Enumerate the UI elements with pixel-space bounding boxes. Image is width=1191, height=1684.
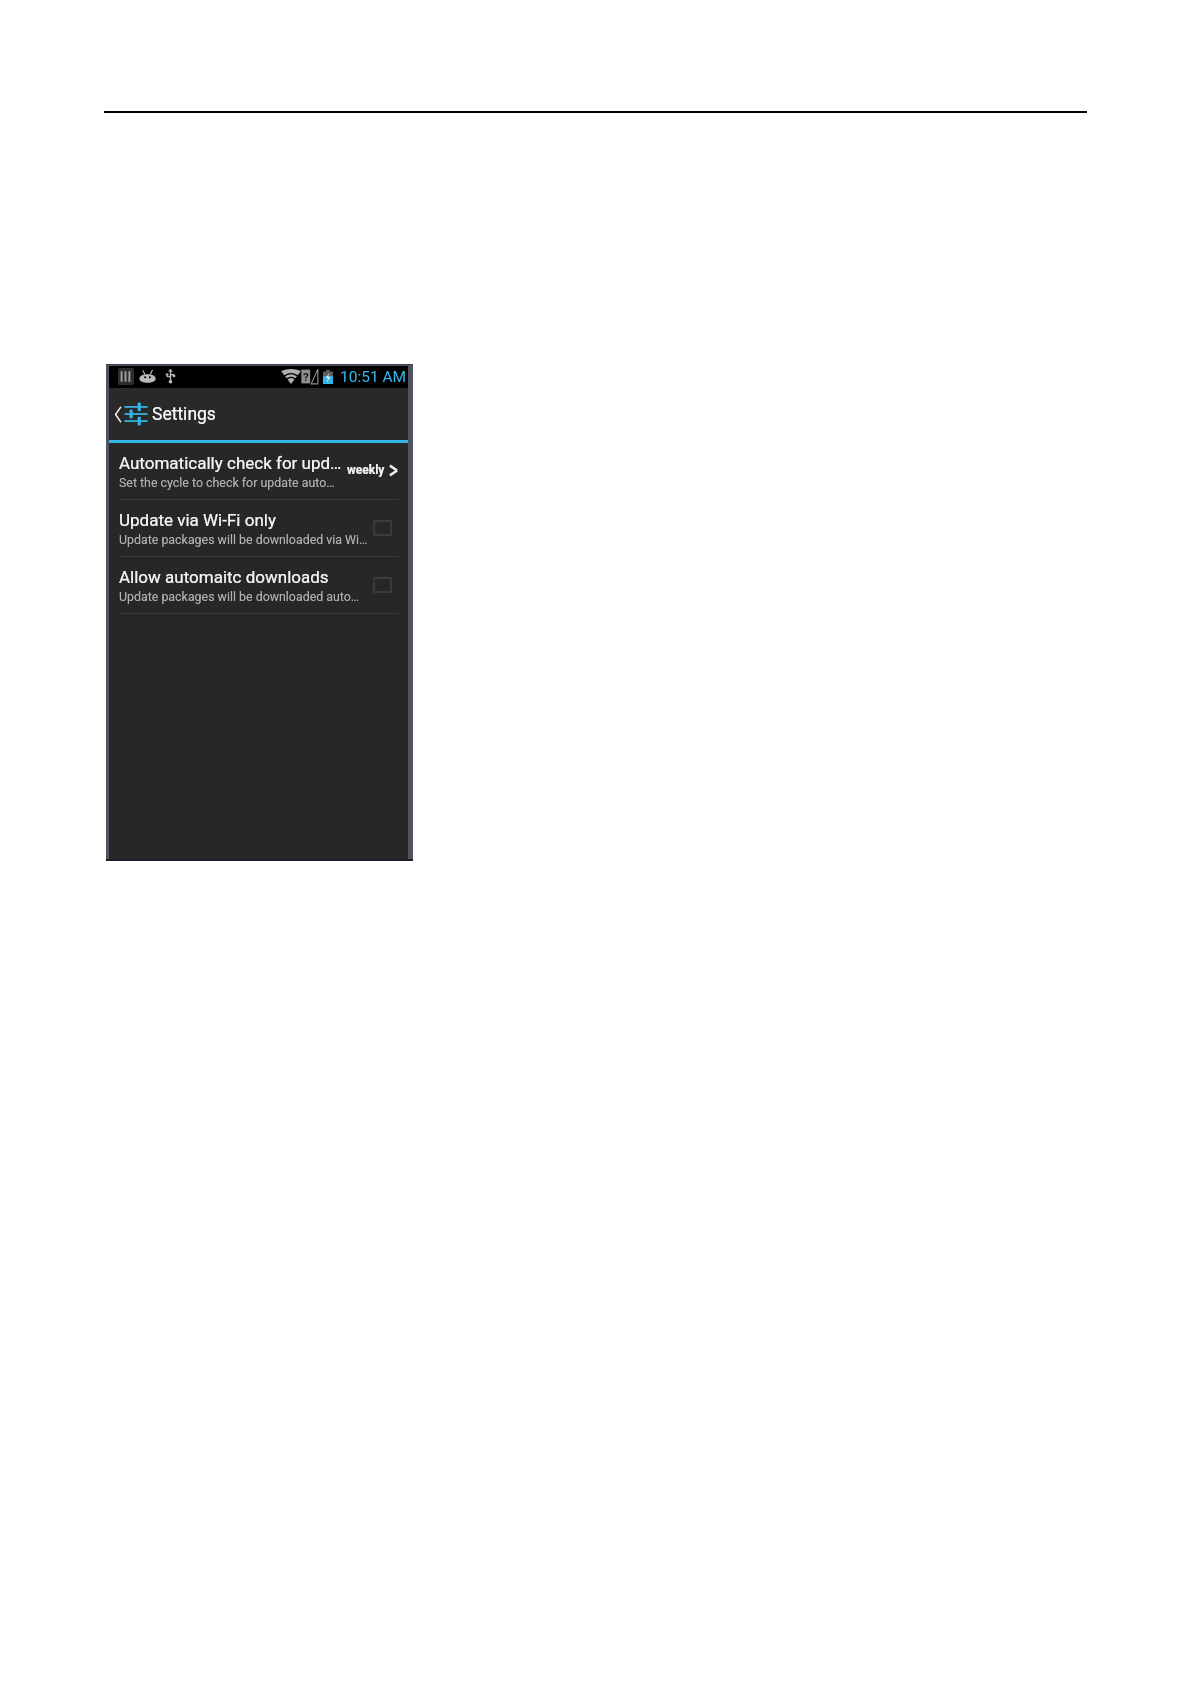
staticText: Update packages will be downloaded via W… — [119, 532, 368, 547]
button[interactable]: Update via Wi-Fi only — [109, 500, 408, 556]
staticText: Update packages will be downloaded auto… — [119, 589, 360, 604]
staticText: Settings — [152, 404, 216, 425]
button[interactable]: Toggle checkbox — [371, 574, 393, 596]
staticText: Update via Wi-Fi only — [119, 510, 276, 530]
staticText: Set the cycle to check for update auto… — [119, 475, 335, 490]
button[interactable]: Navigate up to Settings — [109, 388, 222, 440]
staticText: 10:51 AM — [340, 368, 407, 386]
button[interactable]: Allow automaitc downloads — [109, 557, 408, 613]
staticText: Allow automaitc downloads — [119, 567, 329, 587]
button[interactable]: Toggle checkbox — [371, 517, 393, 539]
staticText: Automatically check for upd… — [119, 453, 342, 473]
button[interactable]: Automatically check for upd… — [109, 443, 408, 499]
staticText: weekly — [347, 463, 385, 477]
staticText: ? — [303, 370, 309, 383]
